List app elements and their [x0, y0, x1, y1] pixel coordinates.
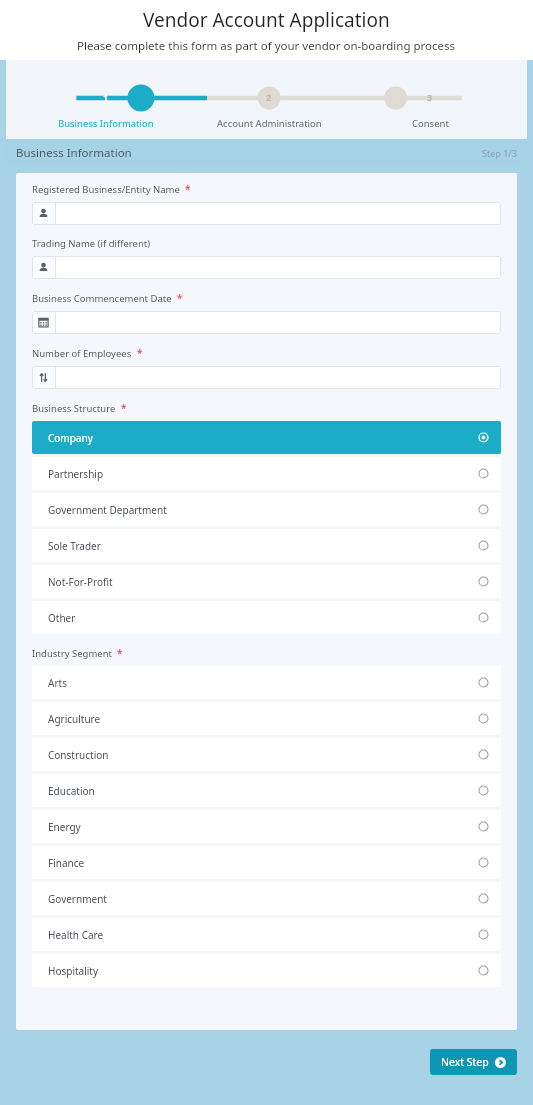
button[interactable]: Energy — [32, 810, 501, 843]
button[interactable]: Not-For-Profit — [32, 565, 501, 598]
button[interactable]: Sole Trader — [32, 529, 501, 562]
staticText: * — [185, 182, 191, 196]
button[interactable]: Arts — [32, 666, 501, 699]
button[interactable]: Agriculture — [32, 702, 501, 735]
staticText: Business Structure — [32, 402, 116, 415]
staticText: Company — [48, 431, 93, 445]
staticText: Trading Name (if different) — [32, 237, 151, 250]
staticText: Industry Segment — [32, 647, 112, 660]
staticText: Finance — [48, 856, 85, 870]
button[interactable]: Health Care — [32, 918, 501, 951]
button[interactable]: Partnership — [32, 457, 501, 490]
staticText: Next Step — [441, 1055, 489, 1069]
staticText: Business Information — [58, 117, 154, 130]
button[interactable]: Government — [32, 882, 501, 915]
button[interactable]: Education — [32, 774, 501, 807]
button[interactable] — [32, 202, 501, 225]
staticText: Business Information — [16, 145, 132, 161]
staticText: Number of Employees — [32, 347, 132, 360]
button[interactable]: Construction — [32, 738, 501, 771]
staticText: Government — [48, 892, 107, 906]
staticText: Health Care — [48, 928, 104, 942]
button[interactable] — [32, 256, 501, 279]
staticText: 3 — [427, 91, 433, 103]
button[interactable]: Next Step — [430, 1049, 517, 1075]
button[interactable]: Other — [32, 601, 501, 634]
staticText: 1 — [103, 91, 109, 103]
staticText: Business Commencement Date — [32, 292, 172, 305]
staticText: Account Administration — [217, 117, 322, 130]
staticText: Not-For-Profit — [48, 575, 113, 589]
button[interactable] — [32, 311, 501, 334]
staticText: Other — [48, 611, 76, 625]
button[interactable] — [32, 366, 501, 389]
staticText: Registered Business/Entity Name — [32, 183, 180, 196]
staticText: Agriculture — [48, 712, 101, 726]
button[interactable]: Hospitality — [32, 954, 501, 987]
staticText: Government Department — [48, 503, 167, 517]
button[interactable]: Government Department — [32, 493, 501, 526]
staticText: Step 1/3 — [482, 147, 517, 159]
staticText: Please complete this form as part of you… — [77, 38, 456, 54]
staticText: Hospitality — [48, 964, 99, 978]
staticText: Construction — [48, 748, 109, 762]
staticText: Arts — [48, 676, 67, 690]
staticText: * — [177, 291, 183, 305]
staticText: Education — [48, 784, 95, 798]
button[interactable]: Finance — [32, 846, 501, 879]
staticText: Consent — [412, 117, 449, 130]
staticText: * — [137, 346, 143, 360]
staticText: Sole Trader — [48, 539, 101, 553]
staticText: * — [121, 401, 127, 415]
button[interactable]: Company — [32, 421, 501, 454]
staticText: Energy — [48, 820, 81, 834]
staticText: * — [117, 646, 123, 660]
staticText: Vendor Account Application — [143, 7, 390, 33]
staticText: 2 — [266, 91, 272, 103]
staticText: Partnership — [48, 467, 104, 481]
